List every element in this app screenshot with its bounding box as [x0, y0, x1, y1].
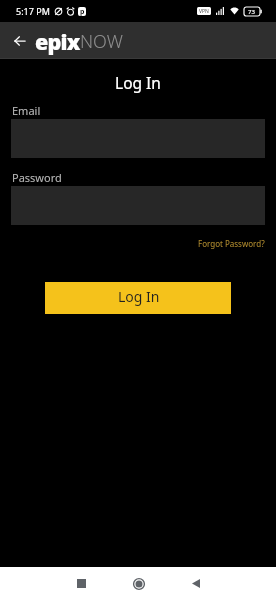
staticText: epix	[35, 27, 80, 56]
staticText: Email	[12, 103, 41, 118]
staticText: Log In	[0, 72, 276, 93]
button[interactable]: Log In	[45, 282, 231, 314]
button[interactable]: Forgot Password?	[198, 239, 276, 250]
staticText: 73	[248, 8, 255, 16]
staticText: Password	[12, 170, 62, 185]
button[interactable]: Back	[0, 22, 37, 59]
staticText: Log In	[118, 287, 160, 306]
staticText: NOW	[80, 29, 123, 54]
button[interactable]: Recents	[53, 567, 110, 600]
button[interactable]: Home	[110, 567, 167, 600]
button[interactable]: Back	[167, 567, 224, 600]
staticText: VPN	[199, 8, 209, 15]
staticText: 5:17 PM	[16, 5, 50, 17]
staticText: Forgot Password?	[198, 238, 265, 249]
staticText: p	[80, 7, 85, 16]
